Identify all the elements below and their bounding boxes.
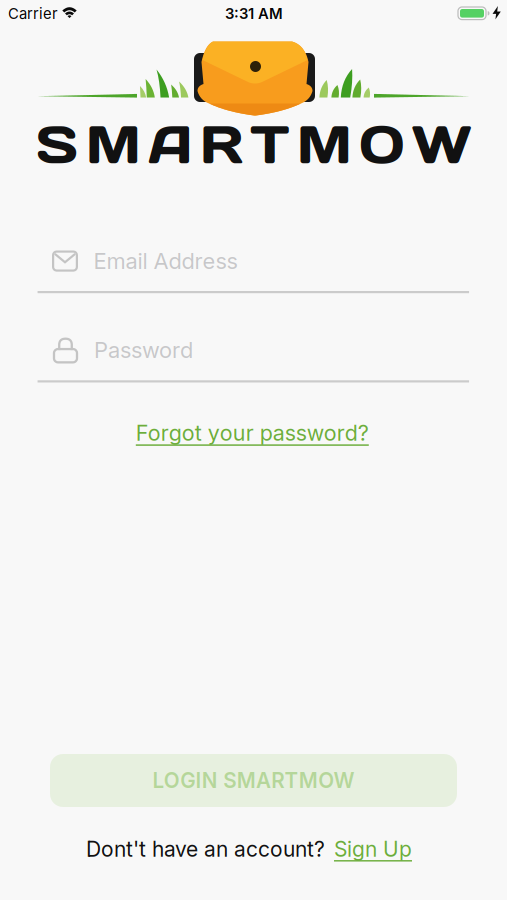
button[interactable]: Forgot your password? [136, 420, 369, 446]
staticText: Forgot your password? [136, 420, 369, 446]
staticText: Carrier [8, 4, 58, 22]
button[interactable]: Email Address [0, 248, 507, 274]
button[interactable]: LOGIN SMARTMOW [50, 754, 457, 807]
staticText: 3:31 AM [225, 4, 283, 22]
staticText: Sign Up [334, 836, 412, 862]
staticText: SMARTMOW [36, 110, 471, 178]
button[interactable]: Password [0, 337, 507, 363]
staticText: Email Address [93, 248, 237, 274]
button[interactable]: Sign Up [334, 836, 412, 862]
staticText: Dont't have an account? [86, 836, 325, 862]
staticText: Password [94, 337, 193, 363]
staticText: LOGIN SMARTMOW [153, 768, 354, 793]
